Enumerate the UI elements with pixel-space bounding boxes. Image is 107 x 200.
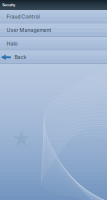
- button[interactable]: Fraud Control: [0, 10, 107, 23]
- button[interactable]: User Management: [0, 23, 107, 37]
- staticText: Security: [2, 3, 15, 7]
- button[interactable]: Back: [0, 50, 107, 64]
- button[interactable]: Halo: [0, 37, 107, 50]
- staticText: Halo: [6, 41, 17, 47]
- staticText: Back: [14, 54, 26, 60]
- staticText: User Management: [6, 27, 51, 33]
- staticText: Fraud Control: [6, 14, 39, 20]
